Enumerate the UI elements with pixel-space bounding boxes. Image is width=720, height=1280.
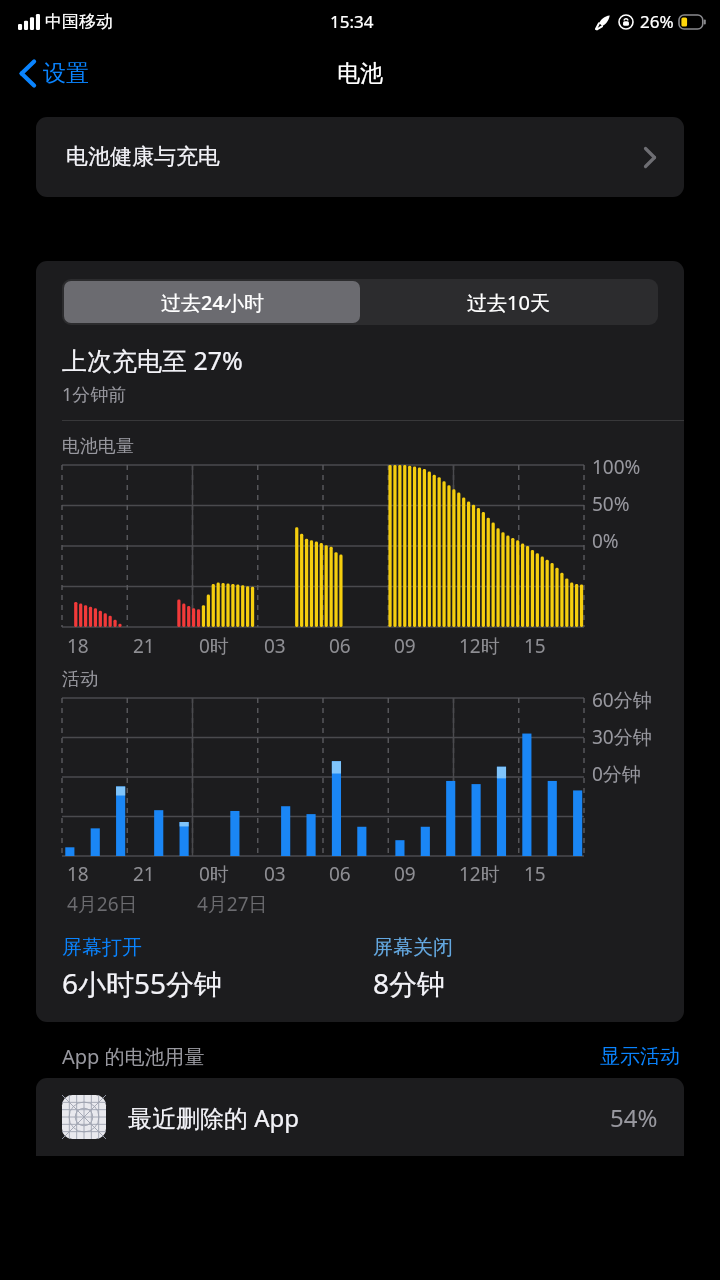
staticText: 54% [610, 1101, 658, 1134]
staticText: 设置 [43, 59, 89, 88]
staticText: 中国移动 [45, 11, 113, 32]
staticText: 15 [524, 861, 546, 887]
staticText: 电池 [337, 59, 383, 88]
staticText: 50% [592, 491, 630, 517]
staticText: 09 [394, 861, 416, 887]
staticText: 12时 [459, 633, 500, 659]
staticText: 100% [592, 454, 641, 480]
staticText: 06 [329, 633, 351, 659]
staticText: 过去10天 [467, 289, 550, 316]
staticText: 显示活动 [600, 1044, 680, 1069]
staticText: 21 [133, 861, 155, 887]
staticText: 1分钟前 [62, 382, 127, 407]
staticText: 6小时55分钟 [62, 964, 223, 1002]
staticText: 8分钟 [373, 964, 446, 1002]
staticText: 30分钟 [592, 724, 652, 750]
staticText: 0% [592, 528, 619, 554]
staticText: 18 [67, 633, 89, 659]
staticText: 15:34 [330, 10, 374, 33]
button[interactable]: 过去24小时 [64, 281, 360, 323]
button[interactable]: 最近删除的 App [36, 1078, 684, 1156]
staticText: 电池健康与充电 [66, 143, 220, 171]
staticText: 03 [264, 633, 286, 659]
staticText: 0时 [199, 633, 229, 659]
button[interactable]: 电池健康与充电 [36, 117, 684, 197]
staticText: 电池电量 [62, 435, 134, 458]
staticText: 03 [264, 861, 286, 887]
staticText: 15 [524, 633, 546, 659]
staticText: 0时 [199, 861, 229, 887]
staticText: 4月26日 [67, 891, 138, 917]
staticText: 上次充电至 27% [62, 343, 243, 377]
button[interactable]: 显示活动 [596, 1040, 684, 1073]
staticText: 26% [640, 10, 674, 33]
staticText: 06 [329, 861, 351, 887]
staticText: 18 [67, 861, 89, 887]
staticText: 活动 [62, 668, 98, 691]
staticText: 21 [133, 633, 155, 659]
staticText: 12时 [459, 861, 500, 887]
staticText: App 的电池用量 [62, 1043, 205, 1070]
button[interactable]: 设置 [16, 53, 93, 94]
staticText: 4月27日 [197, 891, 268, 917]
staticText: 屏幕关闭 [373, 935, 453, 960]
staticText: 最近删除的 App [128, 1101, 300, 1134]
staticText: 屏幕打开 [62, 935, 142, 960]
button[interactable]: 过去10天 [360, 281, 656, 323]
staticText: 60分钟 [592, 687, 652, 713]
staticText: 09 [394, 633, 416, 659]
staticText: 过去24小时 [161, 289, 264, 316]
staticText: 0分钟 [592, 761, 641, 787]
